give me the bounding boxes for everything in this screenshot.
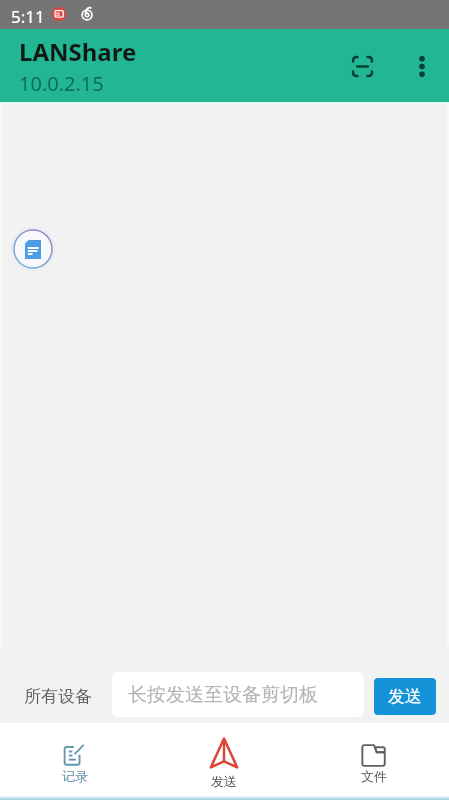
button[interactable]: 发送 <box>149 723 299 796</box>
button[interactable]: Scan QR code <box>336 40 388 92</box>
button[interactable]: 长按发送至设备剪切板 <box>112 672 364 717</box>
staticText: 文件 <box>361 768 387 784</box>
staticText: 记录 <box>62 768 88 784</box>
staticText: 10.0.2.15 <box>19 70 104 97</box>
staticText: LANShare <box>19 35 137 68</box>
staticText: 发送 <box>388 686 422 707</box>
staticText: 长按发送至设备剪切板 <box>128 683 318 707</box>
button[interactable]: 记录 <box>0 723 149 796</box>
staticText: 5:11 <box>11 5 45 28</box>
button[interactable]: More options <box>396 40 448 92</box>
staticText: 所有设备 <box>24 686 92 707</box>
button[interactable]: 文件 <box>299 723 449 796</box>
button[interactable]: 发送 <box>374 678 436 715</box>
button[interactable]: Device <box>11 227 55 271</box>
staticText: 发送 <box>211 773 237 789</box>
